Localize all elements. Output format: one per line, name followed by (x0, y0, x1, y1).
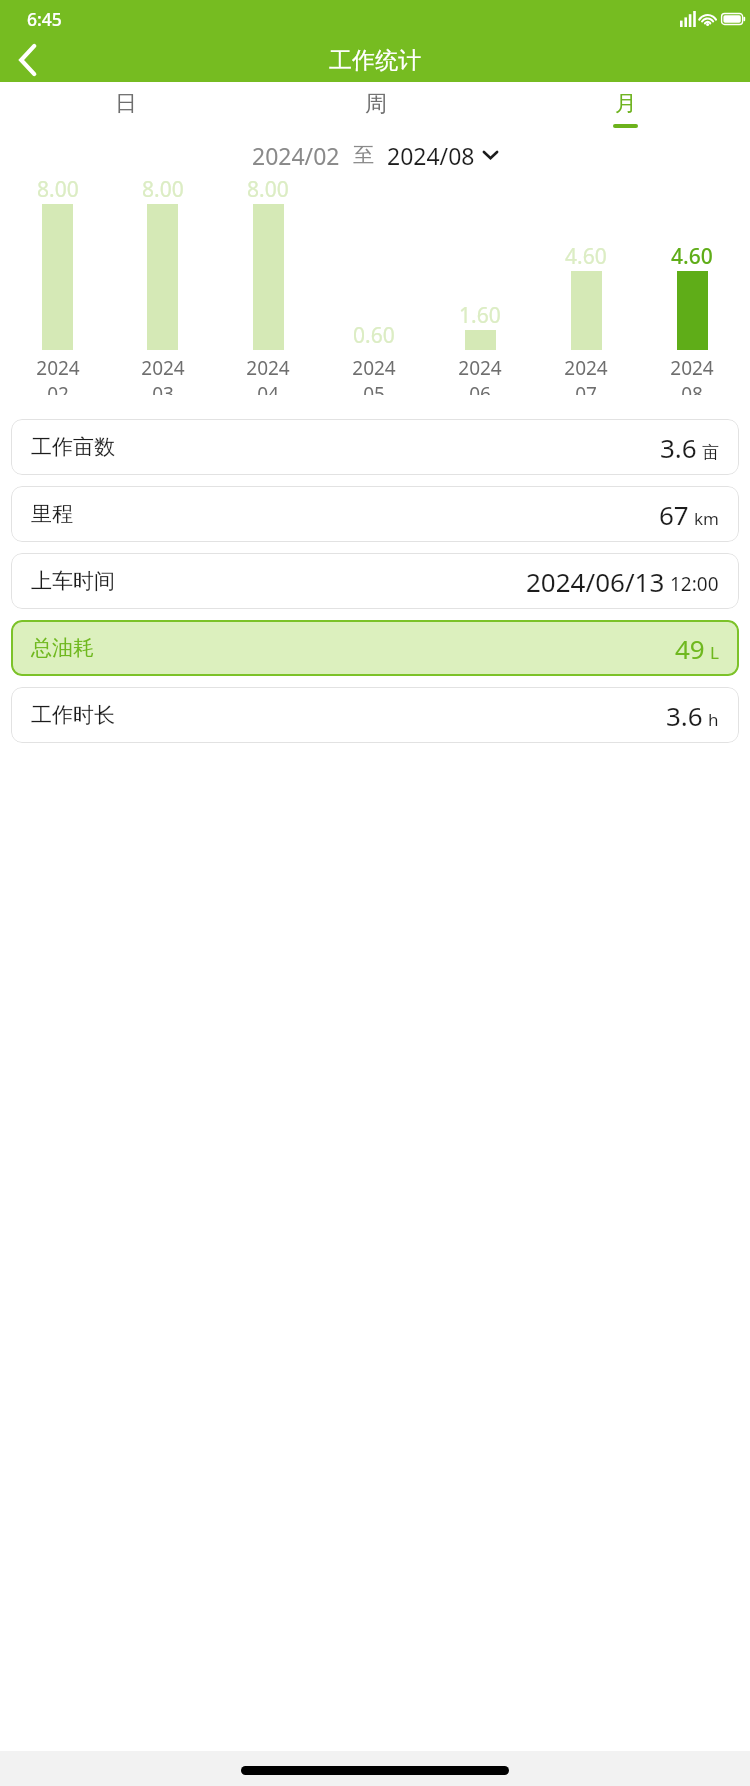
staticText: L (710, 641, 719, 664)
staticText: 2024 (141, 355, 185, 381)
button[interactable]: 里程 (11, 486, 739, 542)
staticText: 总油耗 (31, 635, 94, 661)
staticText: 49 (675, 631, 705, 666)
staticText: 8.00 (142, 175, 184, 204)
staticText: 2024 (352, 355, 396, 381)
staticText: 2024/02 (252, 140, 340, 171)
staticText: 里程 (31, 501, 73, 527)
staticText: 亩 (702, 442, 719, 463)
staticText: 4.60 (565, 242, 607, 271)
staticText: 8.00 (247, 175, 289, 204)
staticText: 6:45 (27, 7, 62, 31)
staticText: 67 (659, 497, 689, 532)
staticText: 月 (615, 90, 637, 118)
button[interactable]: 月 (500, 82, 750, 135)
staticText: 工作时长 (31, 702, 115, 728)
staticText: 上车时间 (31, 568, 115, 594)
button[interactable]: Back (0, 38, 56, 82)
staticText: 1.60 (459, 301, 501, 330)
staticText: 04 (257, 381, 279, 395)
button[interactable]: 周 (250, 82, 500, 135)
staticText: 日 (115, 90, 137, 118)
button[interactable]: 工作亩数 (11, 419, 739, 475)
staticText: 工作统计 (329, 46, 421, 75)
button[interactable]: 上车时间 (11, 553, 739, 609)
staticText: 05 (363, 381, 385, 395)
staticText: 06 (469, 381, 491, 395)
staticText: 2024/06/13 (526, 564, 665, 599)
staticText: h (708, 708, 719, 731)
staticText: 12:00 (670, 571, 719, 597)
staticText: 2024 (458, 355, 502, 381)
staticText: 08 (681, 381, 703, 395)
staticText: 03 (152, 381, 174, 395)
staticText: 工作亩数 (31, 434, 115, 460)
staticText: 2024 (670, 355, 714, 381)
staticText: 2024 (246, 355, 290, 381)
button[interactable]: 工作时长 (11, 687, 739, 743)
staticText: 至 (353, 142, 374, 168)
staticText: 8.00 (37, 175, 79, 204)
staticText: 3.6 (666, 698, 703, 733)
staticText: 02 (47, 381, 69, 395)
staticText: 周 (365, 90, 387, 118)
staticText: 2024 (564, 355, 608, 381)
button[interactable]: 总油耗 (11, 620, 739, 676)
staticText: 07 (575, 381, 597, 395)
staticText: 2024/08 (387, 140, 475, 171)
button[interactable]: 日 (0, 82, 250, 135)
staticText: 2024 (36, 355, 80, 381)
button[interactable]: 2024/02 (0, 135, 750, 175)
staticText: 4.60 (671, 242, 713, 271)
staticText: 0.60 (353, 321, 395, 350)
staticText: 3.6 (660, 430, 697, 465)
staticText: km (694, 507, 719, 530)
